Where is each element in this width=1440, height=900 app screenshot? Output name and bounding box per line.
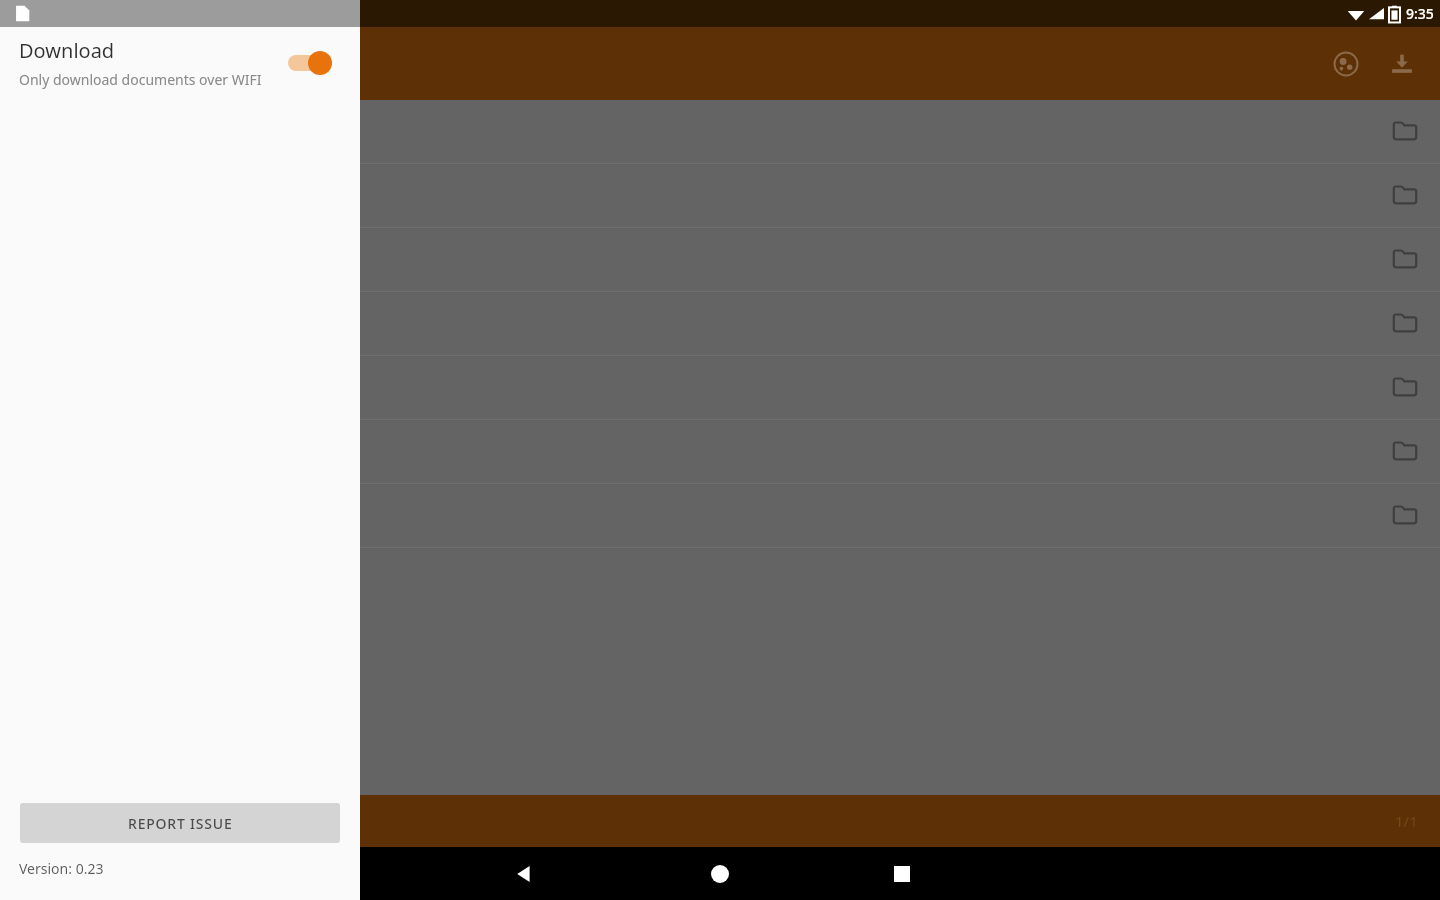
button[interactable] [0, 420, 1440, 484]
staticText: Only download documents over WIFI [19, 70, 262, 89]
button[interactable] [0, 164, 1440, 228]
button[interactable]: REPORT ISSUE [20, 803, 340, 843]
button[interactable]: Download [0, 27, 360, 99]
staticText: 9:35 [1406, 4, 1434, 23]
button[interactable]: Download [1378, 40, 1426, 88]
button[interactable]: Recent apps [878, 850, 926, 898]
staticText: Download [19, 37, 115, 64]
button[interactable] [0, 100, 1440, 164]
staticText: REPORT ISSUE [128, 814, 233, 833]
button[interactable]: Download over WIFI toggle [286, 46, 340, 80]
button[interactable] [0, 292, 1440, 356]
button[interactable] [0, 228, 1440, 292]
button[interactable]: Language [1322, 40, 1370, 88]
button[interactable] [0, 484, 1440, 548]
button[interactable] [0, 356, 1440, 420]
button[interactable]: Back [500, 850, 548, 898]
staticText: Version: 0.23 [19, 859, 104, 878]
staticText: 1/1 [1395, 811, 1418, 831]
button[interactable]: Home [696, 850, 744, 898]
